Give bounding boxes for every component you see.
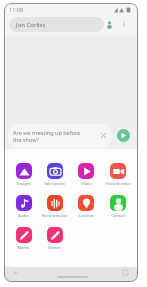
staticText: Images (17, 181, 31, 186)
button[interactable]: Images (8, 163, 39, 195)
button[interactable]: Clear text (98, 130, 109, 141)
button[interactable]: Video (70, 163, 102, 195)
button[interactable]: Location (70, 195, 102, 227)
staticText: Are we meeting up before the show? (13, 129, 81, 143)
staticText: Sketch (48, 245, 61, 250)
staticText: Location (78, 213, 95, 218)
staticText: Memo (17, 245, 30, 250)
button[interactable]: Record video (102, 163, 134, 195)
button[interactable]: Audio (8, 195, 39, 227)
button[interactable]: Contact (102, 195, 134, 227)
button[interactable]: Jon Corliss (9, 17, 104, 32)
button[interactable]: Send message (117, 129, 130, 142)
button[interactable]: Sketch (39, 227, 70, 259)
button[interactable]: Are we meeting up before the show? (8, 124, 112, 148)
staticText: Take photo (44, 181, 65, 186)
button[interactable]: Memo (8, 227, 39, 259)
button[interactable]: Contact details (103, 18, 116, 31)
staticText: Contact (111, 213, 126, 218)
button[interactable]: Recent apps (120, 267, 131, 278)
staticText: 11:08 (9, 6, 24, 13)
staticText: Jon Corliss (16, 21, 46, 29)
staticText: Record audio (42, 213, 67, 218)
staticText: Audio (18, 213, 29, 218)
button[interactable]: More options (118, 18, 130, 30)
button[interactable]: Back (10, 267, 21, 278)
button[interactable]: Take photo (39, 163, 70, 195)
staticText: Record video (106, 181, 131, 186)
staticText: Video (81, 181, 92, 186)
button[interactable]: Record audio (39, 195, 70, 227)
